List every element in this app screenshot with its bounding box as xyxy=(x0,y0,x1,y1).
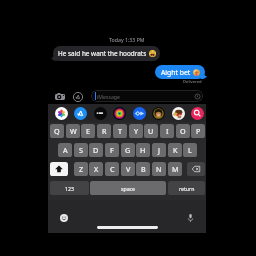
button[interactable]: M xyxy=(168,162,182,176)
button[interactable]: return xyxy=(168,181,205,195)
staticText: H xyxy=(140,145,146,155)
button[interactable]: K xyxy=(168,143,182,157)
button[interactable]: App 2 xyxy=(92,105,108,121)
staticText: K xyxy=(173,145,178,155)
staticText: X xyxy=(94,164,99,174)
staticText: L xyxy=(188,145,192,155)
staticText: S xyxy=(79,145,83,155)
staticText: M xyxy=(172,164,179,174)
button[interactable]: Q xyxy=(50,124,64,138)
button[interactable]: A xyxy=(58,143,72,157)
staticText: iMessage xyxy=(97,93,120,100)
staticText: Z xyxy=(79,164,84,174)
button[interactable]: App 7 xyxy=(189,105,205,121)
button[interactable]: Apps xyxy=(71,90,84,103)
staticText: P xyxy=(196,126,201,136)
button[interactable]: He said he want the hoodrats xyxy=(53,46,160,61)
button[interactable]: Aight bet xyxy=(155,65,205,79)
staticText: U xyxy=(148,126,154,136)
button[interactable]: O xyxy=(176,124,190,138)
staticText: Q xyxy=(54,126,60,136)
staticText: B xyxy=(141,164,146,174)
staticText: space xyxy=(121,185,136,192)
button[interactable]: Backspace xyxy=(187,162,205,176)
staticText: V xyxy=(126,164,131,174)
button[interactable]: S xyxy=(74,143,88,157)
button[interactable]: Y xyxy=(129,124,143,138)
button[interactable]: iMessage xyxy=(91,90,203,102)
staticText: O xyxy=(180,126,186,136)
staticText: I xyxy=(166,126,169,136)
button[interactable]: App 1 xyxy=(72,105,88,121)
button[interactable]: T xyxy=(113,124,127,138)
button[interactable]: X xyxy=(89,162,103,176)
staticText: F xyxy=(110,145,114,155)
button[interactable]: Shift xyxy=(50,162,68,176)
staticText: E xyxy=(86,126,90,136)
button[interactable]: Take photo xyxy=(53,90,66,103)
button[interactable]: L xyxy=(183,143,197,157)
button[interactable]: D xyxy=(89,143,103,157)
staticText: N xyxy=(156,164,162,174)
button[interactable]: Emoji keyboard xyxy=(58,212,69,223)
staticText: Aight bet xyxy=(161,68,191,77)
button[interactable]: Z xyxy=(74,162,88,176)
button[interactable]: R xyxy=(97,124,111,138)
staticText: return xyxy=(179,185,195,192)
button[interactable]: 123 xyxy=(50,181,89,195)
staticText: 123 xyxy=(65,185,74,192)
button[interactable]: J xyxy=(152,143,166,157)
staticText: G xyxy=(125,145,131,155)
staticText: C xyxy=(110,164,115,174)
staticText: J xyxy=(158,145,160,155)
button[interactable]: E xyxy=(81,124,95,138)
staticText: A xyxy=(63,145,68,155)
staticText: Today 1:33 PM xyxy=(109,36,145,43)
button[interactable]: C xyxy=(105,162,119,176)
button[interactable]: App 5 xyxy=(150,105,166,121)
button[interactable]: V xyxy=(121,162,135,176)
staticText: R xyxy=(102,126,107,136)
button[interactable]: B xyxy=(136,162,150,176)
staticText: D xyxy=(93,145,99,155)
button[interactable]: U xyxy=(144,124,158,138)
button[interactable]: App 6 xyxy=(170,105,186,121)
staticText: He said he want the hoodrats xyxy=(58,49,147,58)
staticText: W xyxy=(70,126,77,136)
button[interactable]: G xyxy=(121,143,135,157)
staticText: Delivered xyxy=(183,79,202,85)
button[interactable]: H xyxy=(136,143,150,157)
button[interactable]: space xyxy=(90,181,166,195)
button[interactable]: App 4 xyxy=(131,105,147,121)
button[interactable]: W xyxy=(66,124,80,138)
staticText: T xyxy=(118,126,122,136)
button[interactable]: P xyxy=(191,124,205,138)
button[interactable]: Dictation xyxy=(185,212,196,223)
button[interactable]: N xyxy=(152,162,166,176)
button[interactable]: App 3 xyxy=(111,105,127,121)
button[interactable]: I xyxy=(160,124,174,138)
button[interactable]: App 0 xyxy=(53,105,69,121)
button[interactable]: F xyxy=(105,143,119,157)
staticText: Y xyxy=(134,126,139,136)
